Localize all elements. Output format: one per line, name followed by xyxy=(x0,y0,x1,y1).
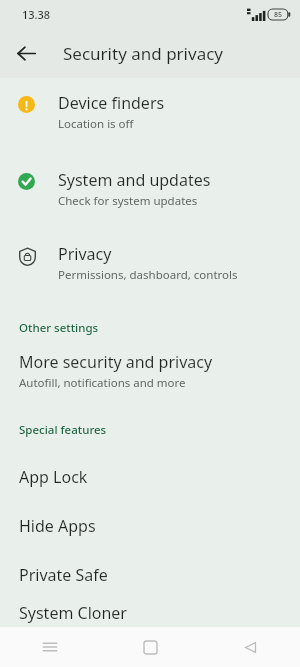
staticText: 85 xyxy=(274,10,283,20)
button[interactable]: Recent apps xyxy=(0,627,100,667)
staticText: App Lock xyxy=(19,466,88,488)
button[interactable]: More security and privacy xyxy=(0,349,300,395)
staticText: Hide Apps xyxy=(19,515,96,537)
staticText: Permissions, dashboard, controls xyxy=(58,267,238,283)
staticText: Security and privacy xyxy=(63,42,224,65)
staticText: Special features xyxy=(19,422,107,438)
button[interactable]: Back xyxy=(200,627,300,667)
staticText: Privacy xyxy=(58,243,112,265)
staticText: Other settings xyxy=(19,320,99,336)
staticText: 13.38 xyxy=(22,7,51,22)
staticText: Autofill, notifications and more xyxy=(19,375,186,391)
staticText: System and updates xyxy=(58,169,211,191)
staticText: More security and privacy xyxy=(19,351,213,373)
button[interactable]: Device finders xyxy=(0,84,300,140)
staticText: Private Safe xyxy=(19,564,108,586)
button[interactable]: Privacy xyxy=(0,235,300,291)
button[interactable]: Back xyxy=(10,37,42,69)
staticText: System Cloner xyxy=(19,602,127,624)
staticText: Device finders xyxy=(58,92,165,114)
button[interactable]: Hide Apps xyxy=(0,501,300,550)
button[interactable]: System and updates xyxy=(0,161,300,217)
staticText: Check for system updates xyxy=(58,193,198,209)
button[interactable]: System Cloner xyxy=(0,599,300,627)
button[interactable]: Home xyxy=(100,627,200,667)
button[interactable]: App Lock xyxy=(0,452,300,501)
button[interactable]: Private Safe xyxy=(0,550,300,599)
staticText: Location is off xyxy=(58,116,134,132)
